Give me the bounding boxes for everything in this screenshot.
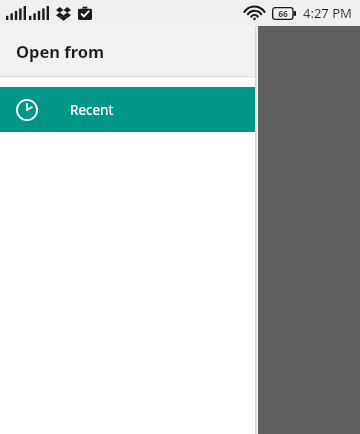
other: Recent — [16, 99, 38, 121]
staticText: Open from — [16, 40, 105, 62]
staticText: Recent — [70, 101, 114, 119]
staticText: 4:27 PM — [303, 4, 352, 22]
staticText: 66 — [278, 8, 288, 20]
button[interactable]: Recent — [0, 87, 255, 132]
